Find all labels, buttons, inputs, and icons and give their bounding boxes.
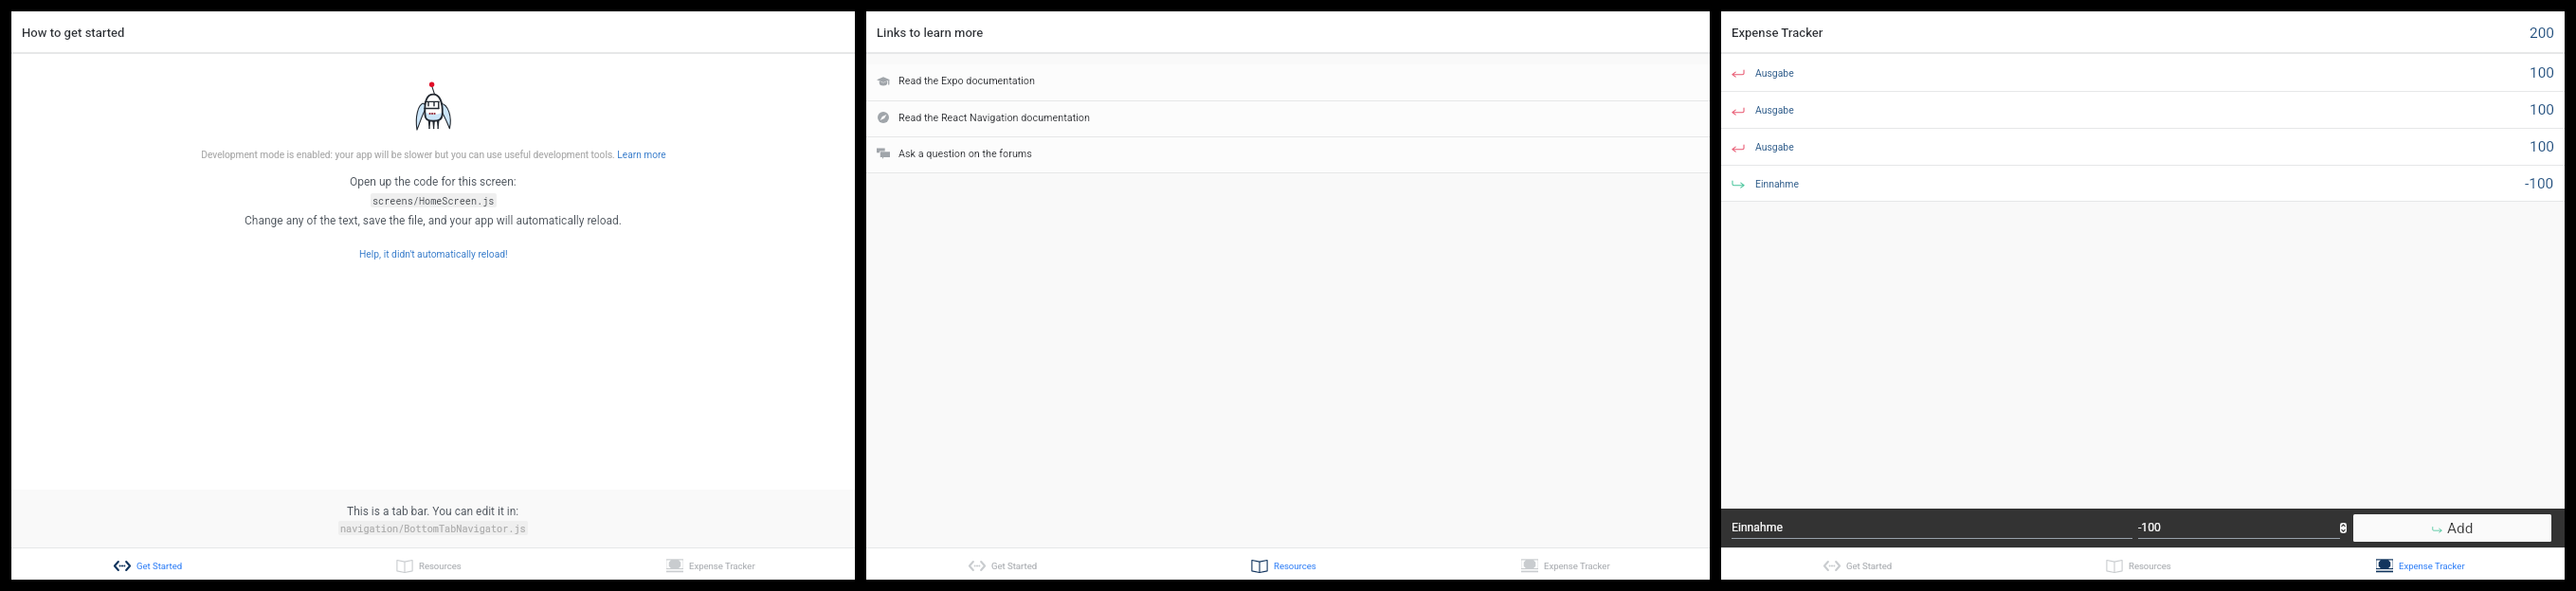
button[interactable]: Resources [292,548,573,580]
staticText: Einnahme [1732,521,1783,534]
button[interactable]: Ausgabe [1721,54,2565,92]
staticText: Ausgabe [1755,104,1794,116]
button[interactable]: Help, it didn't automatically reload! [359,248,508,260]
staticText: Ausgabe [1755,67,1794,79]
staticText: Ausgabe [1755,141,1794,152]
button[interactable]: Ask a question on the forums [866,137,1710,173]
staticText: Expense Tracker [2399,561,2465,571]
staticText: Expense Tracker [1544,561,1610,571]
staticText: Get Started [136,561,183,571]
staticText: -100 [2525,175,2554,192]
button[interactable]: Resources [2002,548,2283,580]
other: Resources [396,559,413,573]
staticText: Get Started [991,561,1038,571]
staticText: Open up the code for this screen: [350,175,517,188]
button[interactable]: Read the Expo documentation [866,64,1710,101]
staticText: This is a tab bar. You can edit it in: [347,505,519,518]
staticText: 200 [2530,25,2554,42]
staticText: Resources [1274,561,1316,571]
staticText: Read the Expo documentation [898,75,1035,87]
staticText: Ask a question on the forums [898,148,1032,160]
button[interactable]: Read the React Navigation documentation [866,101,1710,137]
staticText: Add [2447,520,2474,537]
other: Expo [414,80,452,132]
staticText: Expense Tracker [689,561,755,571]
other: Expense Tracker [2376,559,2393,573]
staticText: -100 [2138,521,2161,534]
other: Get Started [1823,559,1841,573]
button[interactable]: Expense Tracker [1428,548,1710,580]
other: Expense Tracker [666,559,683,573]
staticText: 100 [2530,138,2554,155]
button[interactable]: Get Started [1721,548,2002,580]
staticText: Einnahme [1755,178,1799,189]
staticText: 100 [2530,64,2554,81]
button[interactable]: Ausgabe [1721,92,2565,129]
staticText: Resources [2129,561,2171,571]
staticText: Expense Tracker [1732,26,1823,40]
button[interactable]: Expense Tracker [2283,548,2565,580]
button[interactable]: Ausgabe [1721,129,2565,166]
button[interactable]: Einnahme [1721,166,2565,202]
staticText: navigation/BottomTabNavigator.js [340,522,526,534]
button[interactable]: Add [2353,514,2551,542]
button[interactable]: Expense Tracker [573,548,855,580]
button[interactable]: Get Started [11,548,292,580]
other: Expense Tracker [1521,559,1538,573]
staticText: Links to learn more [877,26,984,40]
staticText: Change any of the text, save the file, a… [245,214,622,227]
staticText: Resources [419,561,462,571]
staticText: Read the React Navigation documentation [898,112,1090,124]
staticText: screens/HomeScreen.js [372,194,495,206]
staticText: Get Started [1846,561,1893,571]
other: Get Started [114,559,131,573]
staticText: Development mode is enabled: your app wi… [201,150,666,161]
other: Resources [2106,559,2123,573]
button[interactable]: Resources [1147,548,1428,580]
button[interactable]: Get Started [866,548,1147,580]
other: Resources [1251,559,1268,573]
other: Get Started [969,559,986,573]
staticText: How to get started [22,26,125,40]
staticText: 100 [2530,101,2554,118]
